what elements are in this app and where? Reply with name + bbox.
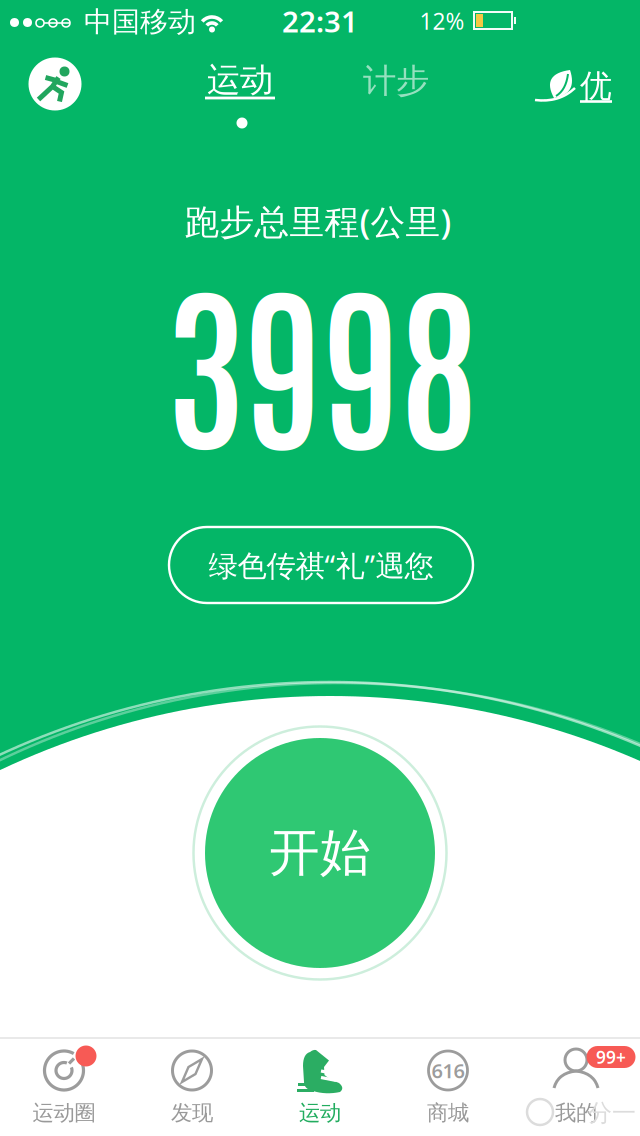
button[interactable]: 优惠: [522, 55, 632, 115]
staticText: 开始: [269, 822, 371, 884]
staticText: 中国移动: [84, 5, 196, 39]
button[interactable]: 运动: [195, 52, 285, 108]
staticText: 3998: [166, 242, 478, 474]
staticText: 99+: [596, 1045, 626, 1068]
button[interactable]: 绿色传祺“礼”遇您: [169, 527, 473, 603]
button[interactable]: 运动圈: [0, 1041, 128, 1129]
button[interactable]: 运动: [256, 1041, 384, 1129]
staticText: 运动: [299, 1100, 341, 1126]
button[interactable]: 开始: [205, 738, 435, 968]
button[interactable]: 发现: [128, 1041, 256, 1129]
button[interactable]: 计步: [363, 60, 429, 101]
staticText: 22:31: [282, 1, 358, 40]
staticText: 优: [580, 66, 612, 106]
staticText: 运动: [207, 59, 273, 100]
staticText: 616: [431, 1057, 464, 1084]
button[interactable]: 跑步: [28, 57, 81, 110]
staticText: 跑步总里程(公里): [184, 198, 451, 244]
staticText: 发现: [171, 1100, 213, 1126]
staticText: 分一: [588, 1098, 636, 1128]
button[interactable]: 616: [384, 1041, 512, 1129]
staticText: 计步: [363, 60, 429, 101]
staticText: 运动圈: [32, 1100, 95, 1126]
staticText: 12%: [419, 6, 464, 36]
staticText: 绿色传祺“礼”遇您: [208, 545, 433, 584]
button[interactable]: 99+: [512, 1041, 640, 1129]
staticText: 商城: [427, 1100, 469, 1126]
staticText: 我的: [555, 1100, 597, 1126]
